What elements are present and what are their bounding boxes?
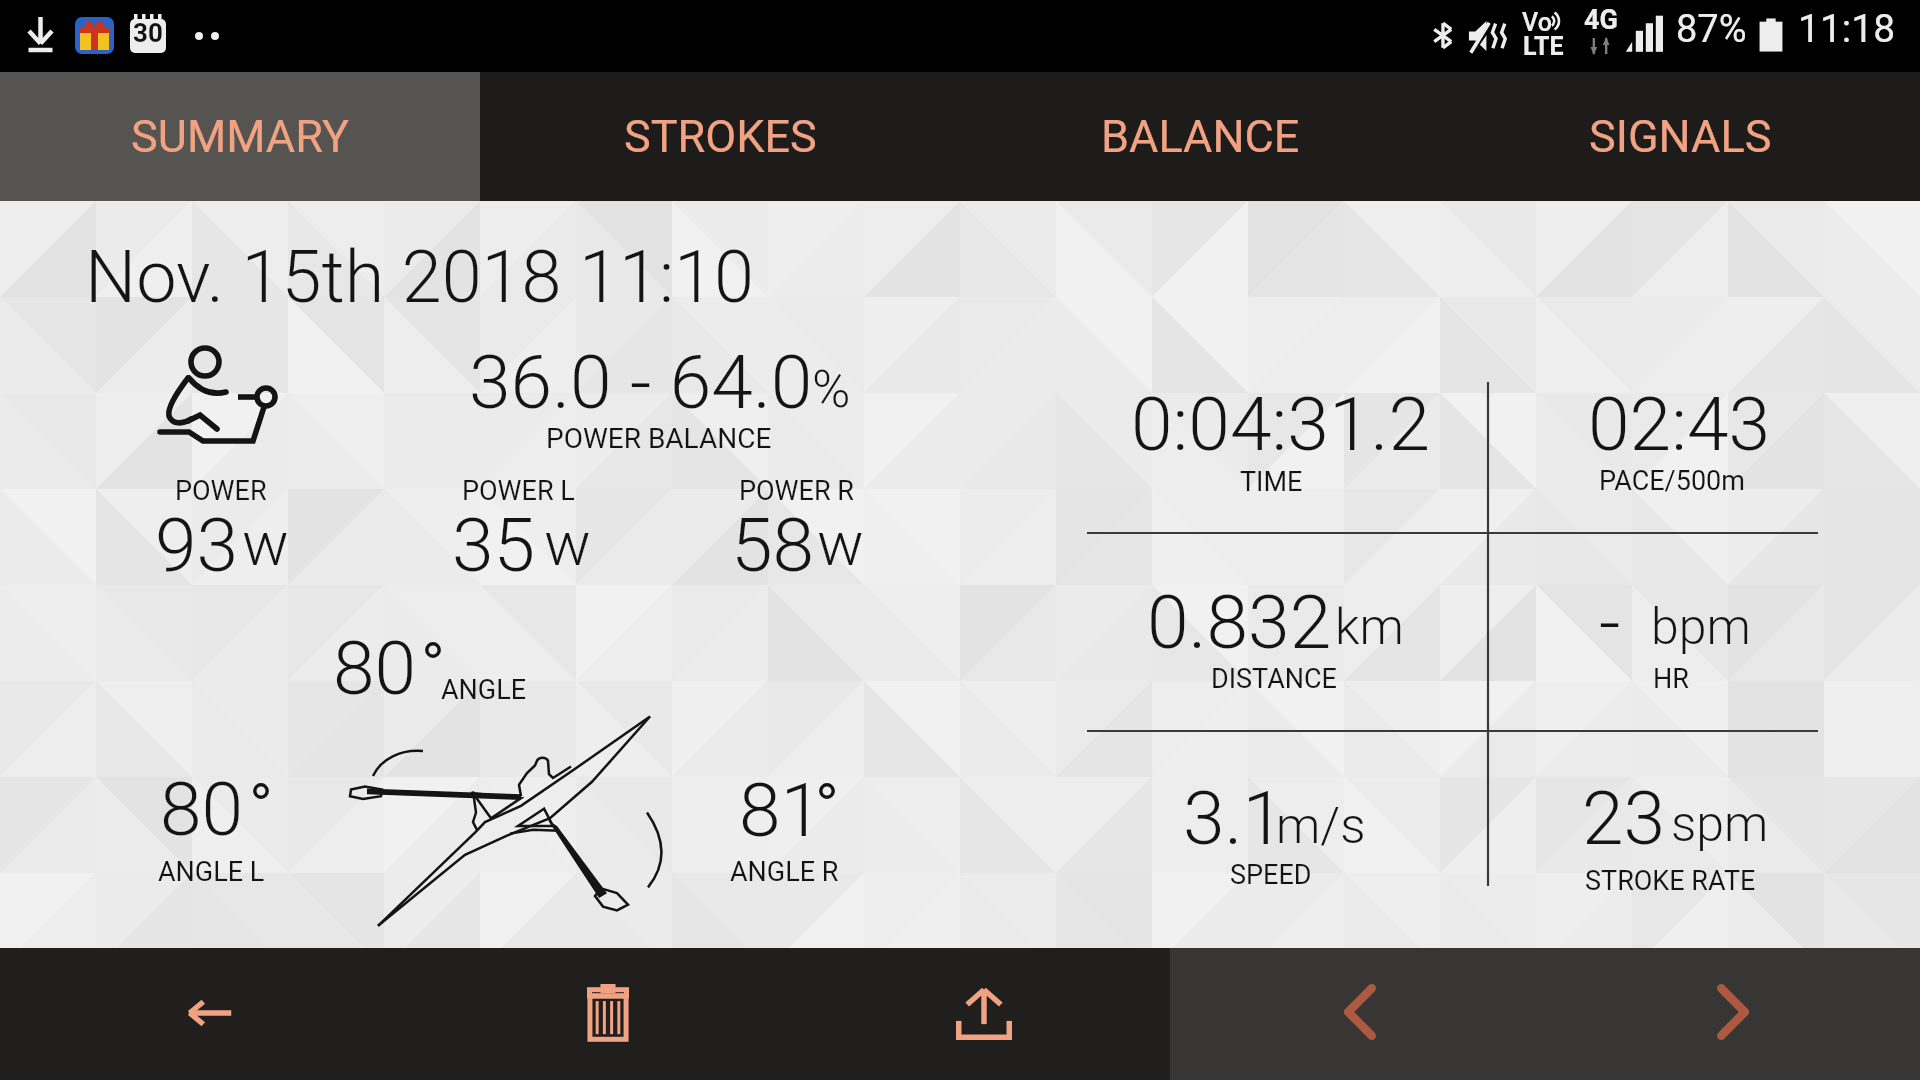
staticText: 87% <box>1676 7 1747 52</box>
staticText: ANGLE R <box>730 856 839 888</box>
staticText: 36.0 - 64.0 <box>469 338 813 426</box>
staticText: km <box>1335 598 1404 657</box>
staticText: 0.832 <box>1147 578 1332 666</box>
staticText: POWER L <box>462 475 575 507</box>
staticText: TIME <box>1240 466 1303 498</box>
staticText: ANGLE L <box>158 856 265 888</box>
staticText: STROKES <box>624 110 817 163</box>
staticText: 11:18 <box>1798 6 1896 52</box>
staticText: POWER R <box>739 475 854 507</box>
staticText: w <box>817 507 864 580</box>
button[interactable]: STROKES <box>480 72 960 201</box>
staticText: 93 <box>155 501 239 589</box>
button[interactable]: Next <box>1545 948 1920 1080</box>
staticText: bpm <box>1651 598 1751 657</box>
button[interactable]: Back <box>15 948 405 1080</box>
staticText: m/s <box>1276 797 1366 856</box>
staticText: % <box>812 359 851 420</box>
staticText: 81 <box>739 766 823 854</box>
staticText: SIGNALS <box>1589 110 1772 163</box>
staticText: 80 <box>333 624 417 712</box>
staticText: - <box>1599 578 1621 666</box>
button[interactable]: Share <box>795 948 1170 1080</box>
staticText: w <box>242 507 289 580</box>
staticText: 58 <box>731 501 815 589</box>
button[interactable]: SUMMARY <box>0 72 480 201</box>
staticText: PACE/500m <box>1599 465 1745 497</box>
staticText: 3.1 <box>1183 774 1285 862</box>
staticText: Nov. 15th 2018 11:10 <box>85 235 754 319</box>
staticText: 35 <box>452 501 536 589</box>
staticText: LTE <box>1523 32 1564 61</box>
staticText: SUMMARY <box>131 110 349 163</box>
staticText: 23 <box>1582 774 1666 862</box>
staticText: BALANCE <box>1101 110 1300 163</box>
staticText: w <box>544 507 591 580</box>
staticText: ANGLE <box>441 674 527 706</box>
staticText: POWER <box>175 475 267 507</box>
staticText: DISTANCE <box>1211 663 1337 695</box>
staticText: POWER BALANCE <box>546 422 772 455</box>
staticText: 4G <box>1584 4 1618 36</box>
staticText: spm <box>1671 795 1769 854</box>
staticText: 80 <box>160 765 244 853</box>
staticText: 30 <box>133 18 163 48</box>
staticText: Vo <box>1522 8 1552 37</box>
button[interactable]: Delete <box>405 948 795 1080</box>
button[interactable]: SIGNALS <box>1440 72 1920 201</box>
button[interactable]: BALANCE <box>960 72 1440 201</box>
staticText: HR <box>1653 663 1689 695</box>
button[interactable]: Previous <box>1170 948 1545 1080</box>
staticText: 0:04:31.2 <box>1131 380 1431 468</box>
staticText: 02:43 <box>1588 380 1771 468</box>
staticText: SPEED <box>1230 859 1312 891</box>
staticText: STROKE RATE <box>1585 865 1756 897</box>
